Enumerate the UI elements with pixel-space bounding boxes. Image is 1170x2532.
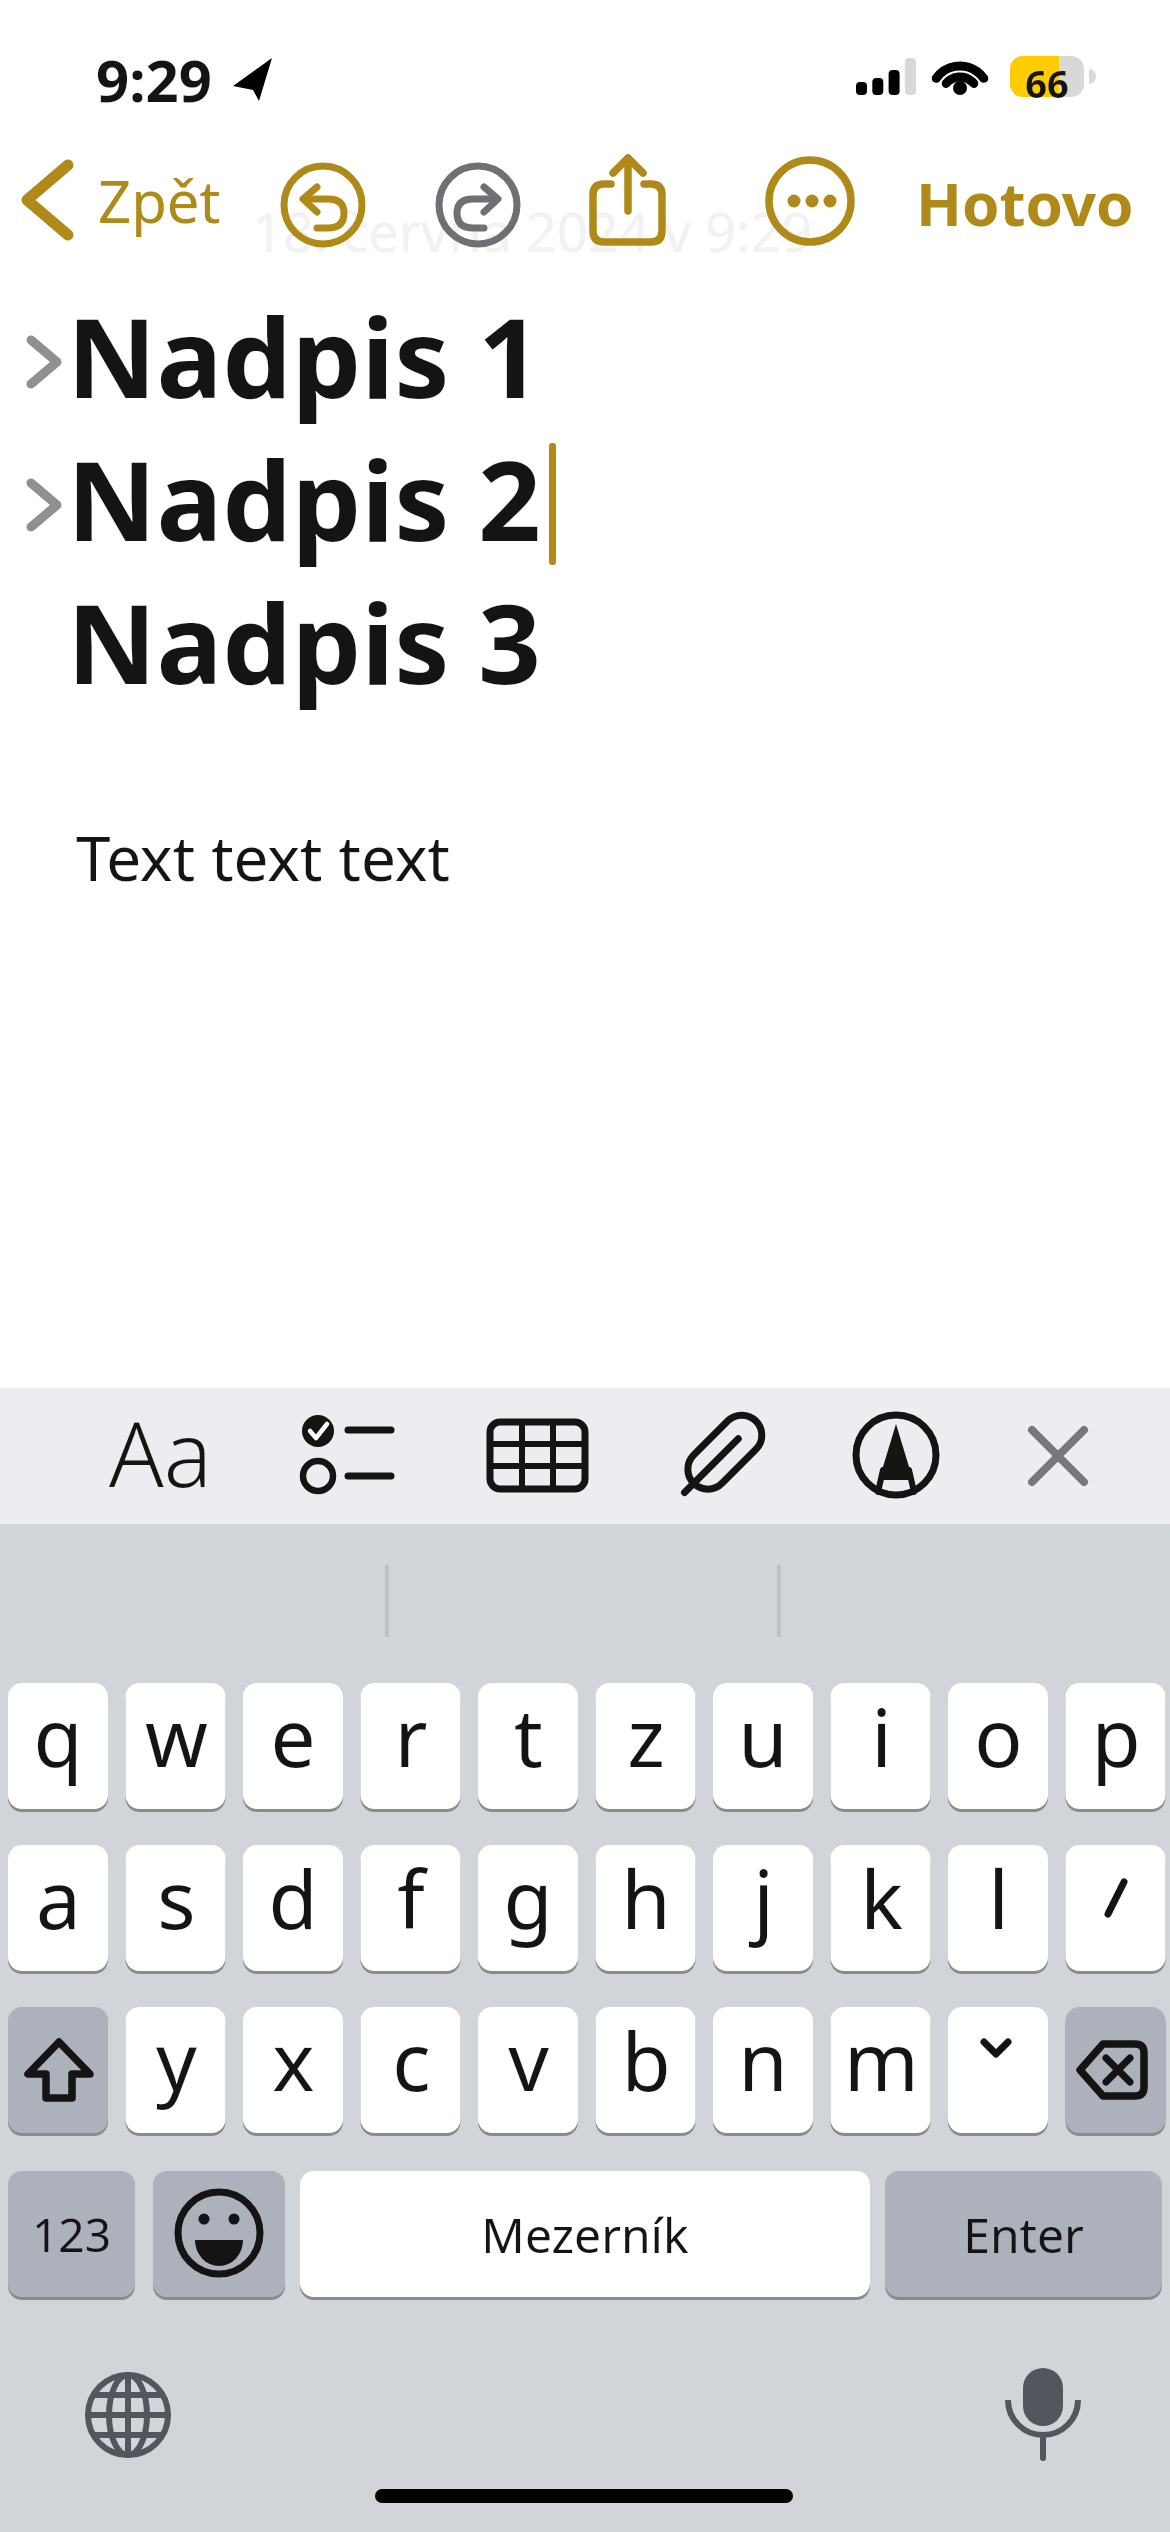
- button[interactable]: m: [831, 1996, 931, 2122]
- staticText: i: [871, 1681, 892, 1790]
- button[interactable]: [588, 155, 673, 245]
- button[interactable]: Zpět: [98, 161, 278, 227]
- button[interactable]: [769, 160, 851, 242]
- button[interactable]: w: [126, 1672, 226, 1798]
- staticText: 18. června 2024 v 9:29: [252, 194, 813, 268]
- button[interactable]: r: [361, 1672, 461, 1798]
- button[interactable]: Enter: [885, 2171, 1162, 2297]
- staticText: g: [503, 1843, 553, 1952]
- button[interactable]: t: [478, 1672, 578, 1798]
- staticText: y: [156, 2005, 197, 2114]
- staticText: f: [397, 1843, 425, 1952]
- button[interactable]: i: [831, 1672, 931, 1798]
- button[interactable]: Hotovo: [916, 162, 1156, 228]
- staticText: j: [753, 1843, 774, 1952]
- staticText: 9:29: [96, 40, 212, 96]
- staticText: n: [738, 2005, 788, 2114]
- staticText: x: [272, 2005, 315, 2114]
- staticText: t: [514, 1681, 543, 1790]
- button[interactable]: c: [361, 1996, 461, 2122]
- staticText: s: [157, 1843, 196, 1952]
- button[interactable]: [1065, 1845, 1165, 1971]
- staticText: Mezerník: [481, 2202, 689, 2267]
- staticText: m: [844, 2005, 919, 2114]
- button[interactable]: 123: [8, 2171, 135, 2297]
- button[interactable]: q: [8, 1672, 108, 1798]
- button[interactable]: g: [478, 1834, 578, 1960]
- button[interactable]: x: [243, 1996, 343, 2122]
- staticText: c: [392, 2005, 431, 2114]
- staticText: k: [860, 1843, 903, 1952]
- staticText: w: [145, 1681, 208, 1790]
- button[interactable]: f: [361, 1834, 461, 1960]
- button[interactable]: j: [713, 1834, 813, 1960]
- staticText: z: [627, 1681, 665, 1790]
- staticText: p: [1091, 1681, 1141, 1790]
- button[interactable]: [8, 2007, 108, 2133]
- staticText: h: [621, 1843, 671, 1952]
- button[interactable]: d: [243, 1834, 343, 1960]
- staticText: Hotovo: [916, 162, 1134, 228]
- button[interactable]: [15, 160, 95, 245]
- staticText: o: [974, 1681, 1023, 1790]
- button[interactable]: l: [948, 1834, 1048, 1960]
- button[interactable]: [438, 165, 518, 245]
- staticText: u: [738, 1681, 788, 1790]
- button[interactable]: e: [243, 1672, 343, 1798]
- button[interactable]: b: [596, 1996, 696, 2122]
- button[interactable]: [845, 1410, 945, 1502]
- staticText: Nadpis 2: [67, 423, 541, 533]
- button[interactable]: [945, 2007, 1045, 2133]
- button[interactable]: [1003, 2365, 1083, 2460]
- staticText: q: [33, 1681, 83, 1790]
- staticText: Aa: [109, 1391, 212, 1479]
- button[interactable]: u: [713, 1672, 813, 1798]
- button[interactable]: s: [126, 1834, 226, 1960]
- button[interactable]: [670, 1410, 780, 1502]
- staticText: 66: [1025, 57, 1069, 95]
- button[interactable]: y: [126, 1996, 226, 2122]
- button[interactable]: [283, 165, 363, 245]
- staticText: a: [36, 1843, 81, 1952]
- button[interactable]: k: [831, 1834, 931, 1960]
- button[interactable]: [480, 1410, 590, 1502]
- button[interactable]: o: [948, 1672, 1048, 1798]
- staticText: l: [988, 1843, 1009, 1952]
- button[interactable]: Mezerník: [300, 2171, 870, 2297]
- button[interactable]: p: [1066, 1672, 1166, 1798]
- button[interactable]: [1065, 2007, 1165, 2133]
- button[interactable]: h: [596, 1834, 696, 1960]
- staticText: r: [394, 1681, 428, 1790]
- staticText: e: [270, 1681, 316, 1790]
- staticText: b: [621, 2005, 671, 2114]
- button[interactable]: [88, 2375, 168, 2455]
- button[interactable]: [1010, 1410, 1105, 1502]
- button[interactable]: [153, 2171, 285, 2297]
- button[interactable]: Aa: [108, 1391, 213, 1479]
- staticText: Enter: [963, 2202, 1084, 2267]
- button[interactable]: n: [713, 1996, 813, 2122]
- staticText: d: [268, 1843, 318, 1952]
- staticText: Nadpis 1: [67, 280, 541, 390]
- button[interactable]: a: [8, 1834, 108, 1960]
- staticText: Nadpis 3: [67, 566, 541, 676]
- button[interactable]: v: [478, 1996, 578, 2122]
- staticText: Zpět: [98, 161, 221, 227]
- button[interactable]: [290, 1410, 400, 1502]
- staticText: Text text text: [76, 815, 450, 885]
- button[interactable]: z: [596, 1672, 696, 1798]
- staticText: 123: [32, 2203, 111, 2266]
- staticText: v: [508, 2005, 549, 2114]
